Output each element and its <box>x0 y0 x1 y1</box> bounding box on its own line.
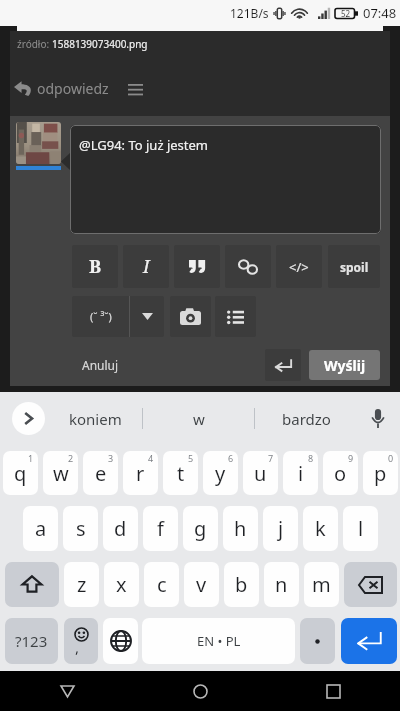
button[interactable]: </> <box>276 245 322 288</box>
button[interactable]: Wyślij <box>309 350 380 380</box>
staticText: 0 <box>388 452 394 464</box>
button[interactable]: I <box>123 245 169 288</box>
button[interactable]: s <box>63 506 98 551</box>
staticText: r <box>136 460 145 487</box>
button[interactable]: y <box>203 451 238 495</box>
button[interactable]: j <box>263 506 298 551</box>
staticText: 5 <box>188 452 194 464</box>
button[interactable]: f <box>143 506 178 551</box>
button[interactable]: Shift <box>5 562 59 607</box>
button[interactable]: r <box>123 451 158 495</box>
staticText: 6 <box>228 452 234 464</box>
button[interactable]: c <box>144 562 179 607</box>
staticText: f <box>157 515 164 542</box>
button[interactable]: ?123 <box>5 618 58 664</box>
button[interactable]: w <box>43 451 78 495</box>
staticText: 3 <box>108 452 114 464</box>
button[interactable]: B <box>72 245 118 288</box>
staticText: u <box>254 460 267 487</box>
button[interactable]: b <box>224 562 259 607</box>
button[interactable]: w <box>143 402 254 436</box>
staticText: w <box>193 409 205 429</box>
staticText: 4 <box>148 452 154 464</box>
button[interactable]: Avatar <box>16 122 61 164</box>
staticText: źródło: <box>17 37 52 51</box>
button[interactable]: z <box>64 562 99 607</box>
staticText: koniem <box>69 409 122 429</box>
staticText: d <box>114 515 127 542</box>
staticText: 9 <box>348 452 354 464</box>
button[interactable]: a <box>23 506 58 551</box>
button[interactable]: k <box>303 506 338 551</box>
button[interactable]: spoil <box>328 245 380 288</box>
button[interactable]: Back <box>0 671 134 711</box>
button[interactable] <box>215 296 256 337</box>
button[interactable]: Voice input <box>362 403 393 434</box>
staticText: b <box>235 571 248 598</box>
button[interactable]: t <box>163 451 198 495</box>
staticText: 52 <box>341 8 351 19</box>
staticText: 7 <box>268 452 274 464</box>
staticText: v <box>196 571 207 598</box>
button[interactable]: Enter <box>341 618 397 664</box>
button[interactable]: EN • PL <box>142 618 295 664</box>
staticText: 121B/s <box>230 5 269 21</box>
button[interactable]: odpowiedz <box>11 74 112 103</box>
staticText: y <box>215 460 226 487</box>
button[interactable]: l <box>343 506 378 551</box>
button[interactable]: @LG94: To już jestem <box>70 125 381 234</box>
staticText: n <box>275 571 288 598</box>
button[interactable]: Backspace <box>344 562 397 607</box>
button[interactable]: d <box>103 506 138 551</box>
staticText: z <box>77 571 87 598</box>
button[interactable]: i <box>283 451 318 495</box>
staticText: spoil <box>340 259 369 275</box>
button[interactable]: q <box>3 451 38 495</box>
button[interactable]: Change language <box>103 618 138 664</box>
button[interactable]: p <box>363 451 398 495</box>
button[interactable]: koniem <box>48 402 142 436</box>
button[interactable]: Menu <box>122 76 148 102</box>
staticText: k <box>315 515 326 542</box>
button[interactable]: v <box>184 562 219 607</box>
staticText: h <box>234 515 247 542</box>
staticText: @LG94: To już jestem <box>79 136 208 154</box>
staticText: m <box>312 571 331 598</box>
staticText: w <box>53 460 69 487</box>
staticText: </> <box>289 258 309 276</box>
button[interactable]: n <box>264 562 299 607</box>
button[interactable] <box>174 245 220 288</box>
button[interactable]: Anuluj <box>76 350 125 380</box>
button[interactable]: h <box>223 506 258 551</box>
button[interactable]: Emoji <box>64 618 98 664</box>
button[interactable]: e <box>83 451 118 495</box>
button[interactable]: o <box>323 451 358 495</box>
staticText: ?123 <box>15 631 48 651</box>
staticText: odpowiedz <box>37 79 109 98</box>
button[interactable] <box>225 245 271 288</box>
button[interactable]: More emoticons <box>130 296 164 337</box>
staticText: i <box>298 460 304 487</box>
button[interactable]: g <box>183 506 218 551</box>
button[interactable]: u <box>243 451 278 495</box>
button[interactable]: m <box>304 562 339 607</box>
staticText: s <box>76 515 86 542</box>
button[interactable] <box>170 296 211 337</box>
staticText: 8 <box>308 452 314 464</box>
staticText: g <box>194 515 207 542</box>
staticText: l <box>358 515 364 542</box>
button[interactable]: More suggestions <box>12 402 45 435</box>
button[interactable]: Home <box>134 671 267 711</box>
button[interactable]: x <box>104 562 139 607</box>
staticText: p <box>374 460 387 487</box>
button[interactable]: Period <box>300 618 335 664</box>
staticText: Wyślij <box>324 356 366 375</box>
staticText: c <box>157 571 167 598</box>
button[interactable]: New line <box>265 349 301 381</box>
staticText: e <box>95 460 107 487</box>
button[interactable]: Recents <box>267 671 400 711</box>
button[interactable]: Emoticons <box>72 296 129 337</box>
staticText: 2 <box>68 452 74 464</box>
button[interactable]: bardzo <box>255 402 358 436</box>
staticText: (˘ ³˘) <box>90 309 112 324</box>
